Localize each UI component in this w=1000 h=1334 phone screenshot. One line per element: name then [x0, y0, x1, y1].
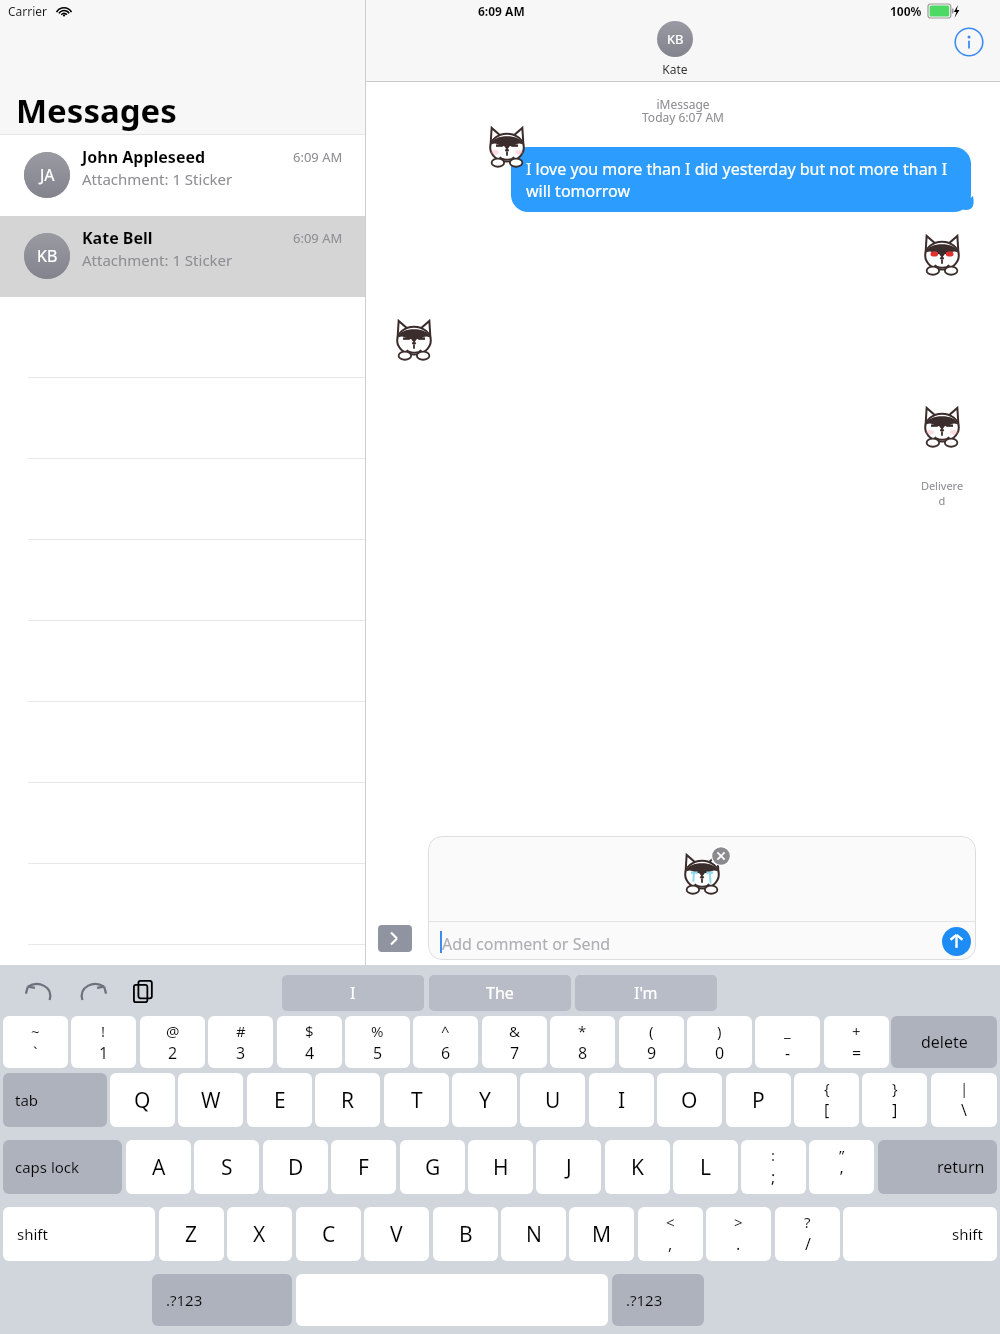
staticText: D [288, 1153, 304, 1182]
button[interactable]: L [673, 1140, 738, 1194]
button[interactable]: Kate [657, 21, 693, 57]
button[interactable]: @ [140, 1016, 205, 1068]
button[interactable]: The [429, 975, 571, 1011]
button[interactable]: + [824, 1016, 889, 1068]
button[interactable]: I [589, 1073, 654, 1127]
button[interactable]: ? [775, 1207, 840, 1261]
button[interactable]: A [126, 1140, 191, 1194]
button[interactable]: Q [110, 1073, 175, 1127]
button[interactable]: Expand apps [378, 925, 412, 952]
staticText: H [493, 1153, 509, 1182]
button[interactable]: Y [452, 1073, 517, 1127]
staticText: 100% [890, 3, 922, 19]
staticText: I [618, 1086, 626, 1115]
button[interactable]: S [194, 1140, 259, 1194]
staticText: return [937, 1156, 985, 1178]
button[interactable]: Send [942, 927, 971, 956]
staticText: N [526, 1220, 542, 1249]
button[interactable]: & [482, 1016, 547, 1068]
button[interactable]: V [364, 1207, 429, 1261]
button[interactable]: > [706, 1207, 771, 1261]
button[interactable]: KB [0, 216, 366, 297]
button[interactable]: B [433, 1207, 498, 1261]
button[interactable]: ^ [413, 1016, 478, 1068]
button[interactable]: X [227, 1207, 292, 1261]
staticText: ` [33, 1042, 38, 1064]
button[interactable]: _ [755, 1016, 820, 1068]
button[interactable]: ” [809, 1140, 874, 1194]
button[interactable]: K [605, 1140, 670, 1194]
button[interactable]: .?123 [152, 1274, 292, 1326]
button[interactable]: return [878, 1140, 997, 1194]
staticText: 4 [305, 1042, 315, 1064]
button[interactable]: Details [954, 27, 984, 57]
button[interactable]: shift [843, 1207, 997, 1261]
button[interactable]: JA [0, 135, 366, 216]
button[interactable]: } [862, 1073, 927, 1127]
button[interactable]: caps lock [3, 1140, 122, 1194]
staticText: C [322, 1220, 336, 1249]
button[interactable]: I'm [575, 975, 717, 1011]
staticText: V [390, 1220, 403, 1249]
staticText: W [201, 1086, 221, 1115]
button[interactable]: U [520, 1073, 585, 1127]
button[interactable]: ! [71, 1016, 136, 1068]
button[interactable]: .?123 [612, 1274, 704, 1326]
staticText: ; [771, 1166, 776, 1188]
button[interactable]: : [741, 1140, 806, 1194]
staticText: The [486, 982, 514, 1004]
staticText: Add comment or Send [442, 933, 611, 955]
button[interactable]: # [208, 1016, 273, 1068]
button[interactable]: C [296, 1207, 361, 1261]
staticText: 6:09 AM [293, 148, 343, 166]
staticText: Attachment: 1 Sticker [82, 169, 233, 189]
staticText: ! [101, 1021, 106, 1041]
button[interactable]: delete [891, 1016, 997, 1068]
staticText: I [350, 982, 356, 1004]
button[interactable]: O [657, 1073, 722, 1127]
staticText: O [681, 1086, 698, 1115]
button[interactable]: W [178, 1073, 243, 1127]
staticText: 2 [168, 1042, 178, 1064]
button[interactable]: Redo [76, 977, 108, 1009]
button[interactable]: P [726, 1073, 791, 1127]
button[interactable]: N [501, 1207, 566, 1261]
button[interactable]: J [536, 1140, 601, 1194]
staticText: ^ [441, 1021, 450, 1041]
button[interactable]: D [263, 1140, 328, 1194]
button[interactable]: % [345, 1016, 410, 1068]
staticText: 8 [578, 1042, 588, 1064]
button[interactable]: ( [619, 1016, 684, 1068]
button[interactable]: G [400, 1140, 465, 1194]
button[interactable]: E [247, 1073, 312, 1127]
button[interactable]: < [638, 1207, 703, 1261]
button[interactable]: H [468, 1140, 533, 1194]
button[interactable]: M [569, 1207, 634, 1261]
button[interactable]: T [384, 1073, 449, 1127]
button[interactable]: Undo [24, 977, 56, 1009]
button[interactable]: I [282, 975, 424, 1011]
staticText: Delivered [918, 478, 966, 508]
button[interactable]: Remove sticker [711, 846, 731, 866]
staticText: R [341, 1086, 355, 1115]
button[interactable]: $ [277, 1016, 342, 1068]
staticText: 7 [510, 1042, 520, 1064]
staticText: ) [717, 1021, 722, 1041]
staticText: Kate Bell [82, 227, 153, 249]
staticText: < [666, 1212, 675, 1232]
button[interactable]: ~ [3, 1016, 68, 1068]
button[interactable]: Z [159, 1207, 224, 1261]
button[interactable]: | [931, 1073, 997, 1127]
button[interactable]: Paste [130, 977, 158, 1005]
button[interactable]: ) [687, 1016, 752, 1068]
staticText: B [459, 1220, 473, 1249]
button[interactable]: shift [3, 1207, 155, 1261]
staticText: F [358, 1153, 369, 1182]
button[interactable]: * [550, 1016, 615, 1068]
button[interactable]: { [794, 1073, 859, 1127]
staticText: { [824, 1078, 830, 1098]
button[interactable]: F [331, 1140, 396, 1194]
button[interactable]: tab [3, 1073, 107, 1127]
button[interactable]: R [315, 1073, 380, 1127]
